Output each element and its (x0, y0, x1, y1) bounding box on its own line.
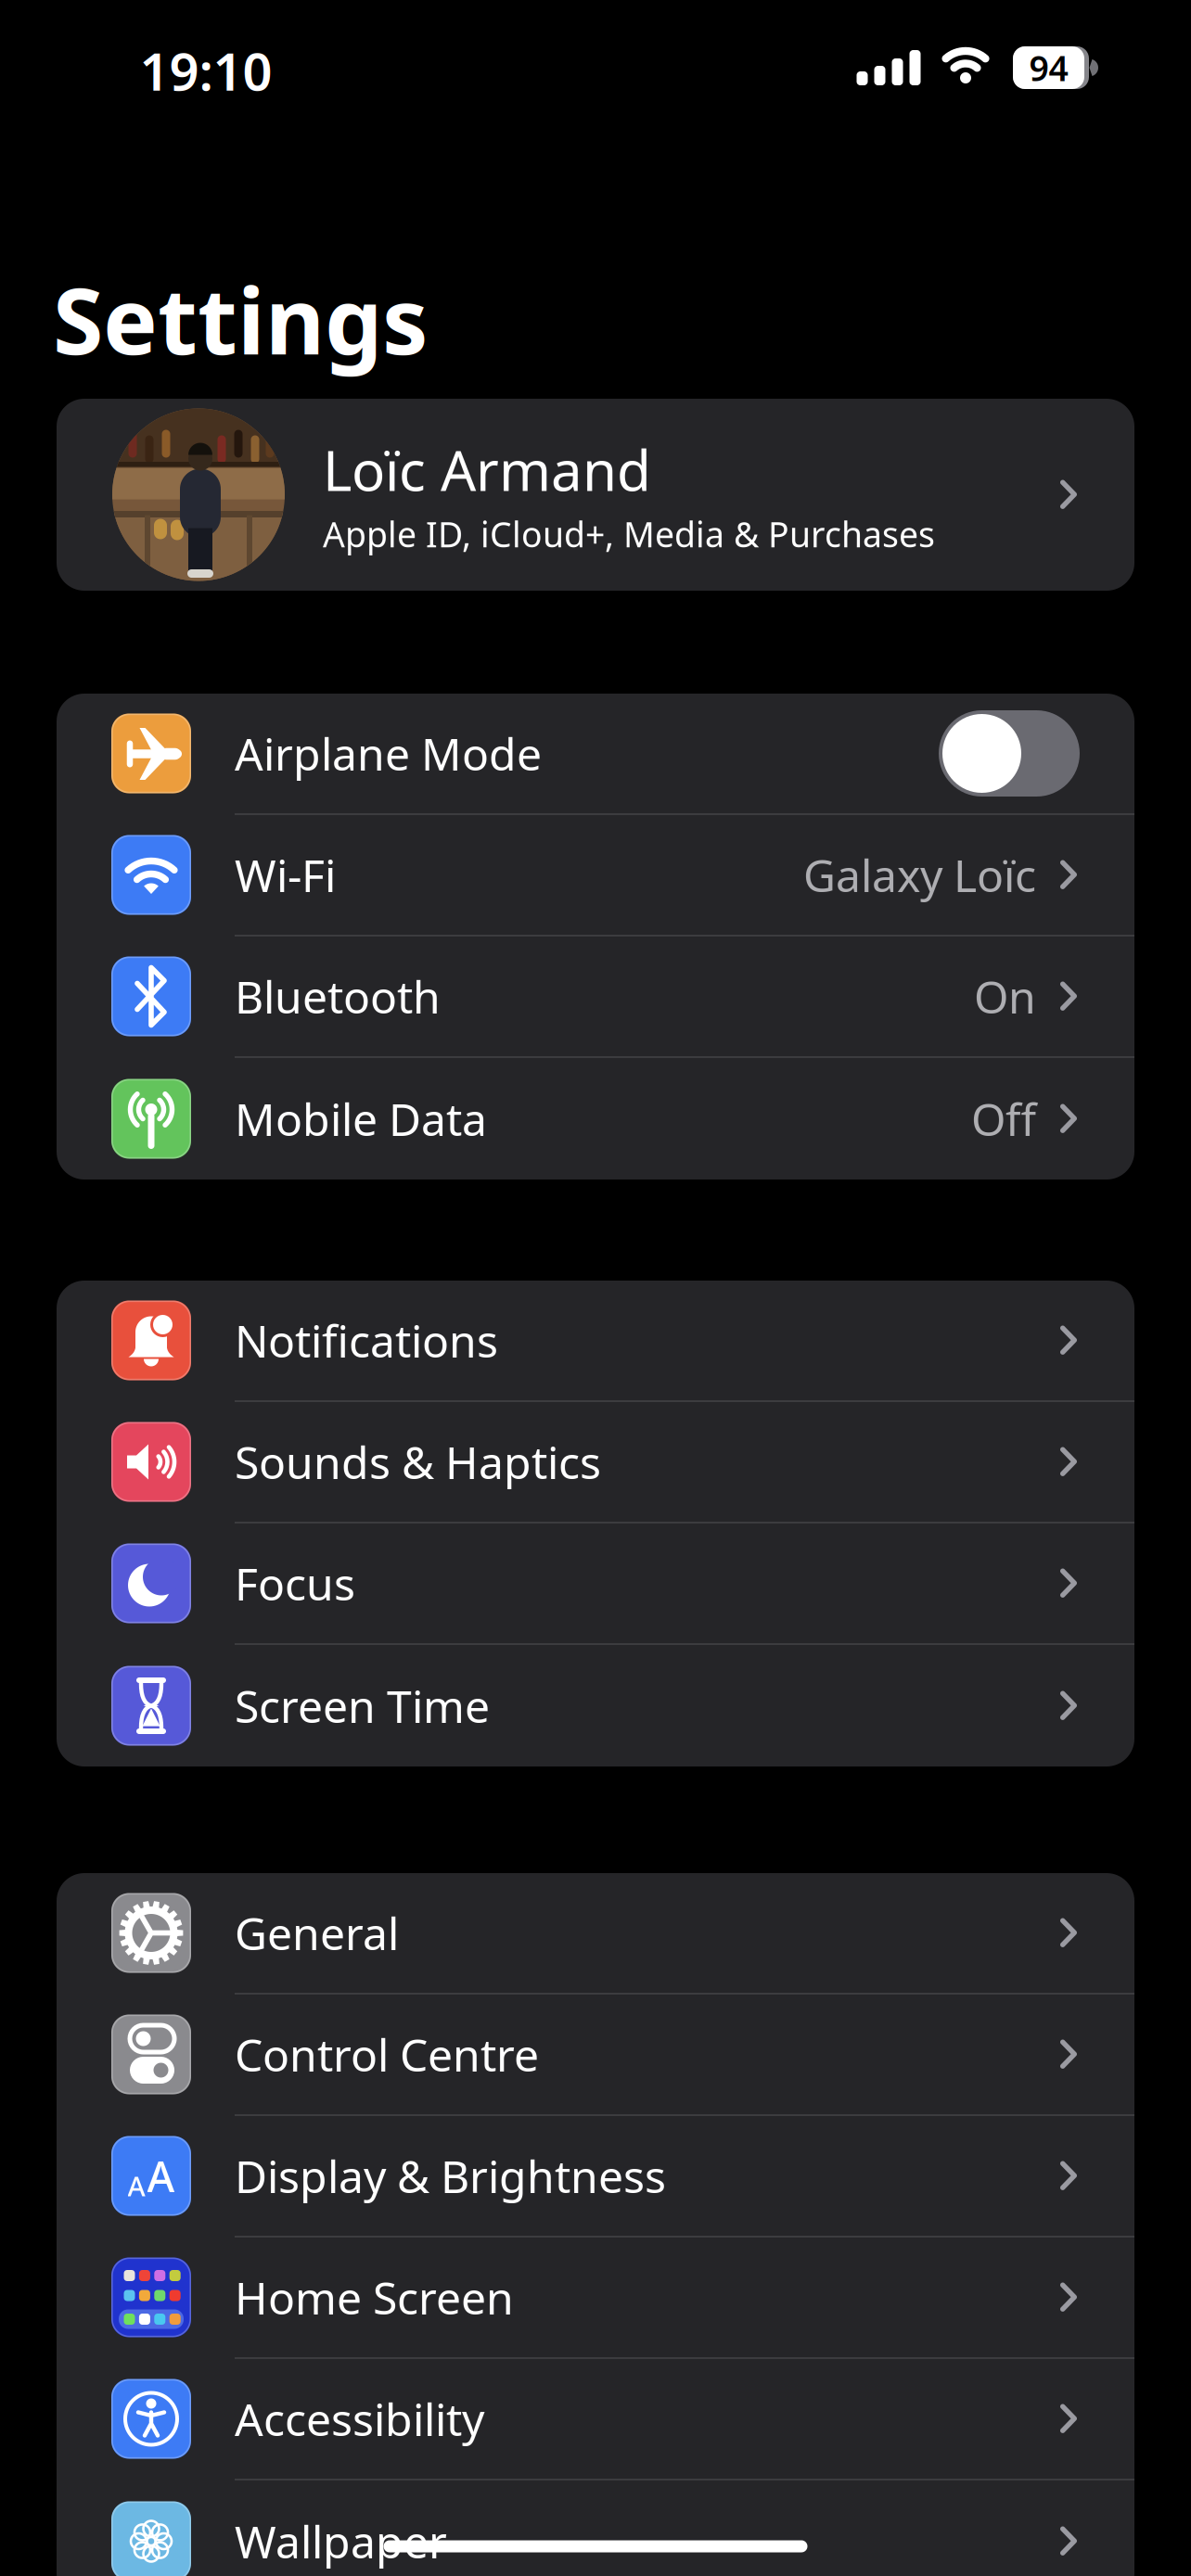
staticText: Wallpaper (235, 2512, 447, 2571)
staticText: Bluetooth (235, 967, 441, 1026)
staticText: A (147, 2148, 175, 2204)
staticText: Control Centre (235, 2025, 539, 2084)
button[interactable]: Wi-Fi (57, 815, 1134, 935)
staticText: Galaxy Loïc (803, 845, 1036, 904)
button[interactable]: Screen Time (57, 1645, 1134, 1766)
button[interactable]: Notifications (57, 1281, 1134, 1400)
staticText: Accessibility (235, 2389, 484, 2448)
staticText: On (974, 967, 1036, 1026)
button[interactable]: General (57, 1873, 1134, 1993)
staticText: Home Screen (235, 2268, 514, 2327)
staticText: 94 (1029, 45, 1068, 91)
button[interactable]: Home Screen (57, 2238, 1134, 2357)
staticText: Wi-Fi (235, 845, 336, 904)
staticText: Notifications (235, 1311, 498, 1370)
staticText: Settings (53, 258, 429, 380)
staticText: Off (971, 1089, 1036, 1148)
staticText: Display & Brightness (235, 2146, 666, 2205)
staticText: Sounds & Haptics (235, 1432, 601, 1491)
button[interactable]: Airplane Mode (57, 694, 1134, 813)
button[interactable]: Control Centre (57, 1995, 1134, 2114)
button[interactable]: Accessibility (57, 2359, 1134, 2479)
staticText: Mobile Data (235, 1089, 487, 1148)
button[interactable]: Mobile Data (57, 1058, 1134, 1180)
button[interactable]: Focus (57, 1524, 1134, 1643)
staticText: A (128, 2168, 145, 2204)
staticText: Screen Time (235, 1676, 490, 1735)
staticText: Airplane Mode (235, 724, 542, 783)
button[interactable]: Sounds & Haptics (57, 1402, 1134, 1522)
staticText: 19:10 (140, 36, 272, 105)
button[interactable]: Wallpaper (57, 2480, 1134, 2576)
staticText: General (235, 1903, 399, 1962)
staticText: Loïc Armand (323, 432, 651, 506)
staticText: Focus (235, 1554, 355, 1613)
button[interactable]: A (57, 2116, 1134, 2236)
button[interactable]: Bluetooth (57, 937, 1134, 1056)
button[interactable]: Loïc Armand (57, 399, 1134, 591)
staticText: Apple ID, iCloud+, Media & Purchases (323, 511, 935, 557)
